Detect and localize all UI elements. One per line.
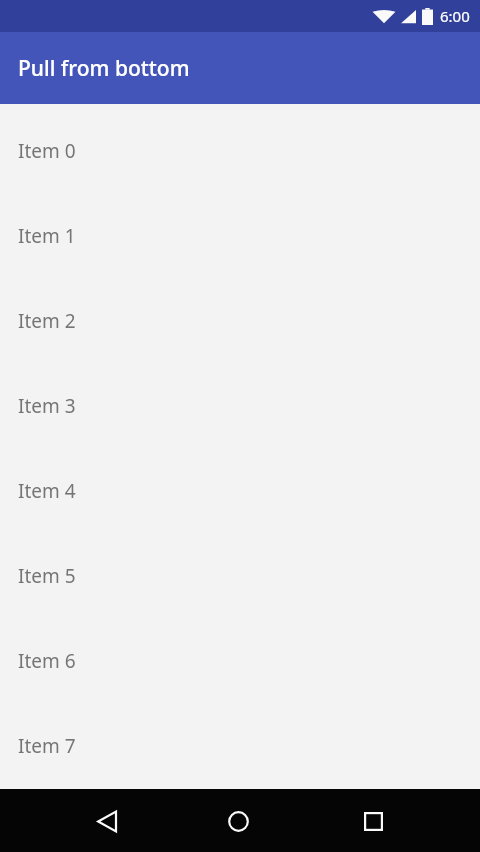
- button[interactable]: Item 0: [0, 108, 480, 193]
- button[interactable]: Item 4: [0, 448, 480, 533]
- staticText: Item 5: [18, 563, 76, 589]
- button[interactable]: Home: [218, 801, 258, 841]
- button[interactable]: Item 6: [0, 618, 480, 703]
- button[interactable]: Item 1: [0, 193, 480, 278]
- staticText: Item 3: [18, 393, 76, 419]
- staticText: Item 0: [18, 138, 76, 164]
- button[interactable]: Recent apps: [353, 801, 393, 841]
- staticText: 6:00: [440, 6, 470, 26]
- button[interactable]: Back: [87, 801, 127, 841]
- staticText: Item 1: [18, 223, 76, 249]
- button[interactable]: Item 3: [0, 363, 480, 448]
- staticText: Item 6: [18, 648, 76, 674]
- button[interactable]: Item 5: [0, 533, 480, 618]
- button[interactable]: Item 7: [0, 703, 480, 788]
- staticText: Item 2: [18, 308, 76, 334]
- staticText: Pull from bottom: [18, 54, 190, 83]
- staticText: Item 7: [18, 733, 76, 759]
- staticText: Item 4: [18, 478, 76, 504]
- button[interactable]: Item 2: [0, 278, 480, 363]
